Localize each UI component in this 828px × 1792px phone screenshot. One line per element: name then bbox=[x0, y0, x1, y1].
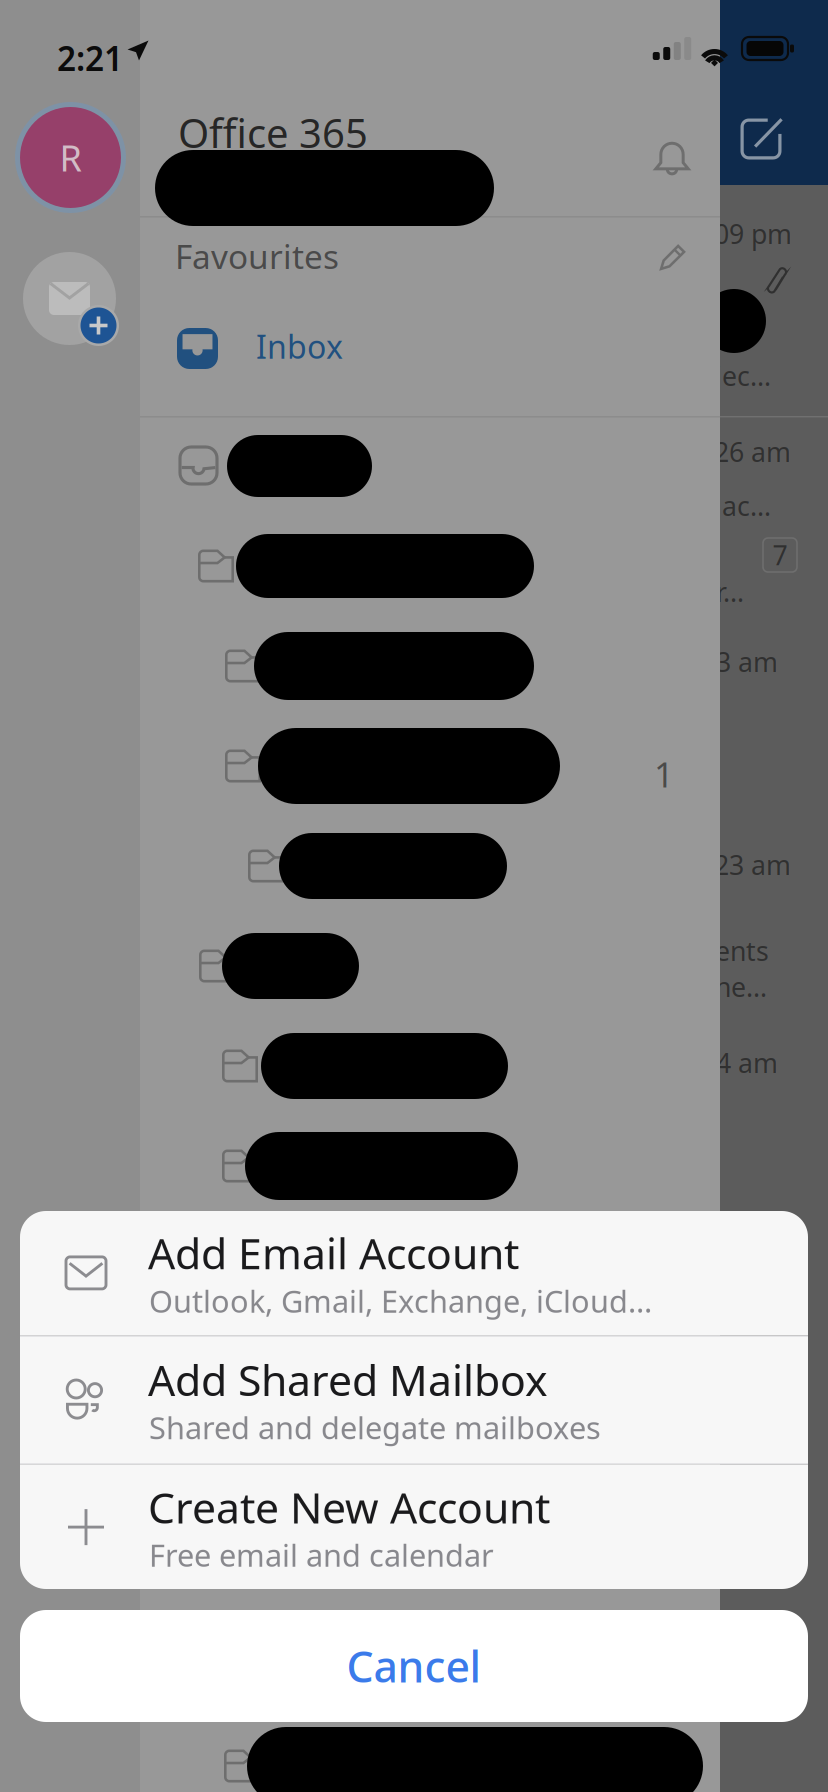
button[interactable]: Folder bbox=[140, 616, 720, 716]
staticText: 23 am bbox=[714, 847, 791, 882]
staticText: r… bbox=[716, 574, 744, 609]
button[interactable]: Folder bbox=[140, 1716, 720, 1792]
staticText: 3 am bbox=[716, 644, 778, 679]
button[interactable]: Inbox folder bbox=[140, 416, 720, 516]
button[interactable]: Edit favourites bbox=[659, 243, 725, 309]
staticText: ac… bbox=[722, 488, 771, 523]
staticText: Add Shared Mailbox bbox=[148, 1351, 548, 1408]
button[interactable]: Inbox bbox=[140, 305, 720, 393]
staticText: 26 am bbox=[714, 434, 791, 469]
staticText: Shared and delegate mailboxes bbox=[149, 1407, 601, 1448]
staticText: 2:21 bbox=[57, 36, 123, 80]
staticText: Create New Account bbox=[148, 1479, 550, 1535]
staticText: Add Email Account bbox=[148, 1224, 519, 1281]
button[interactable]: Notifications bbox=[654, 140, 726, 212]
staticText: 4 am bbox=[716, 1045, 778, 1080]
button[interactable]: Add Shared Mailbox bbox=[20, 1337, 808, 1463]
staticText: ne… bbox=[715, 969, 767, 1004]
staticText: R bbox=[59, 134, 81, 181]
button[interactable]: Folder bbox=[140, 1016, 720, 1116]
staticText: jec… bbox=[715, 358, 771, 393]
button[interactable]: Add Email Account bbox=[20, 1210, 808, 1335]
button[interactable]: Folder bbox=[140, 816, 720, 916]
button[interactable]: Cancel bbox=[20, 1610, 808, 1722]
button[interactable]: New message bbox=[720, 98, 802, 180]
button[interactable]: Folder bbox=[140, 916, 720, 1016]
staticText: Inbox bbox=[256, 325, 343, 367]
staticText: Office 365 bbox=[178, 106, 368, 159]
staticText: Cancel bbox=[346, 1638, 481, 1694]
staticText: 09 pm bbox=[714, 216, 792, 251]
button[interactable]: Create New Account bbox=[20, 1465, 808, 1590]
button[interactable]: Folder bbox=[140, 1116, 720, 1216]
button[interactable]: Add account bbox=[23, 252, 116, 345]
staticText: 1 bbox=[654, 751, 674, 797]
button[interactable]: Folder bbox=[140, 716, 720, 816]
staticText: Free email and calendar bbox=[149, 1535, 494, 1575]
button[interactable]: Folder bbox=[140, 516, 720, 616]
staticText: Outlook, Gmail, Exchange, iCloud… bbox=[149, 1280, 652, 1321]
staticText: 7 bbox=[772, 537, 787, 573]
staticText: ents bbox=[715, 933, 769, 968]
staticText: Favourites bbox=[175, 234, 339, 278]
button[interactable]: Account R bbox=[15, 102, 126, 213]
